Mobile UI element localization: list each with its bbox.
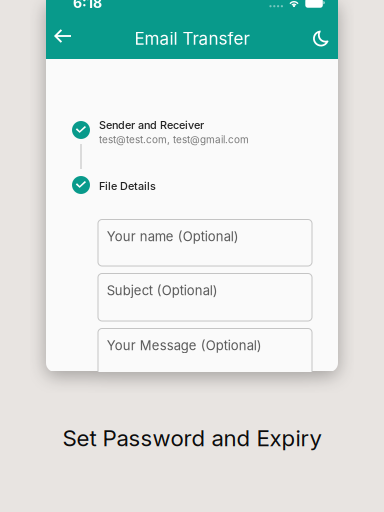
staticText: Your name (Optional) [107, 228, 239, 244]
staticText: Sender and Receiver [99, 118, 204, 132]
staticText: Set Password and Expiry [62, 424, 321, 451]
staticText: File Details [99, 179, 156, 193]
button[interactable]: Back [52, 18, 82, 58]
staticText: Subject (Optional) [107, 282, 218, 298]
staticText: 6:18 [73, 0, 102, 11]
button[interactable]: Toggle dark mode [304, 18, 338, 58]
staticText: Email Transfer [134, 28, 249, 49]
button[interactable]: Your name (Optional) [98, 219, 312, 266]
button[interactable]: Set Password and Expiry [0, 418, 384, 458]
button[interactable]: Your Message (Optional) [98, 328, 312, 388]
button[interactable]: Subject (Optional) [98, 273, 312, 321]
staticText: test@test.com, test@gmail.com [99, 134, 249, 146]
staticText: Your Message (Optional) [107, 337, 262, 353]
